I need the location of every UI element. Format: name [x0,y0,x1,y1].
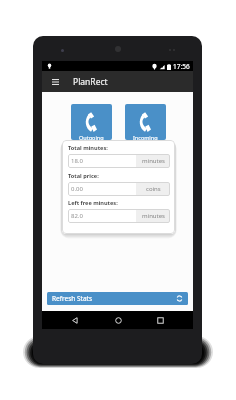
button[interactable]: Recents [151,311,169,329]
button[interactable]: Menu [49,75,62,88]
staticText: 17:56 [173,62,190,71]
staticText: Left free minutes: [68,199,118,207]
button[interactable]: 82.0 [68,209,170,223]
staticText: Total minutes: [68,144,108,152]
button[interactable]: Refresh Stats [47,292,188,305]
staticText: minutes [142,212,165,220]
button[interactable]: Back [66,311,84,329]
staticText: 82.0 [71,212,83,220]
staticText: PlanRect [73,76,108,88]
staticText: 0.00 [71,185,83,193]
staticText: 18.0 [71,157,83,165]
button[interactable]: Outgoing [71,104,112,140]
button[interactable]: 18.0 [68,154,170,168]
button[interactable]: Home [109,311,127,329]
button[interactable]: 0.00 [68,182,170,196]
button[interactable]: Incoming [125,104,166,140]
staticText: Outgoing [79,134,104,140]
staticText: Total price: [68,172,99,180]
staticText: Incoming [133,134,158,140]
staticText: minutes [142,157,165,165]
staticText: Refresh Stats [52,294,93,303]
staticText: coins [146,185,161,193]
